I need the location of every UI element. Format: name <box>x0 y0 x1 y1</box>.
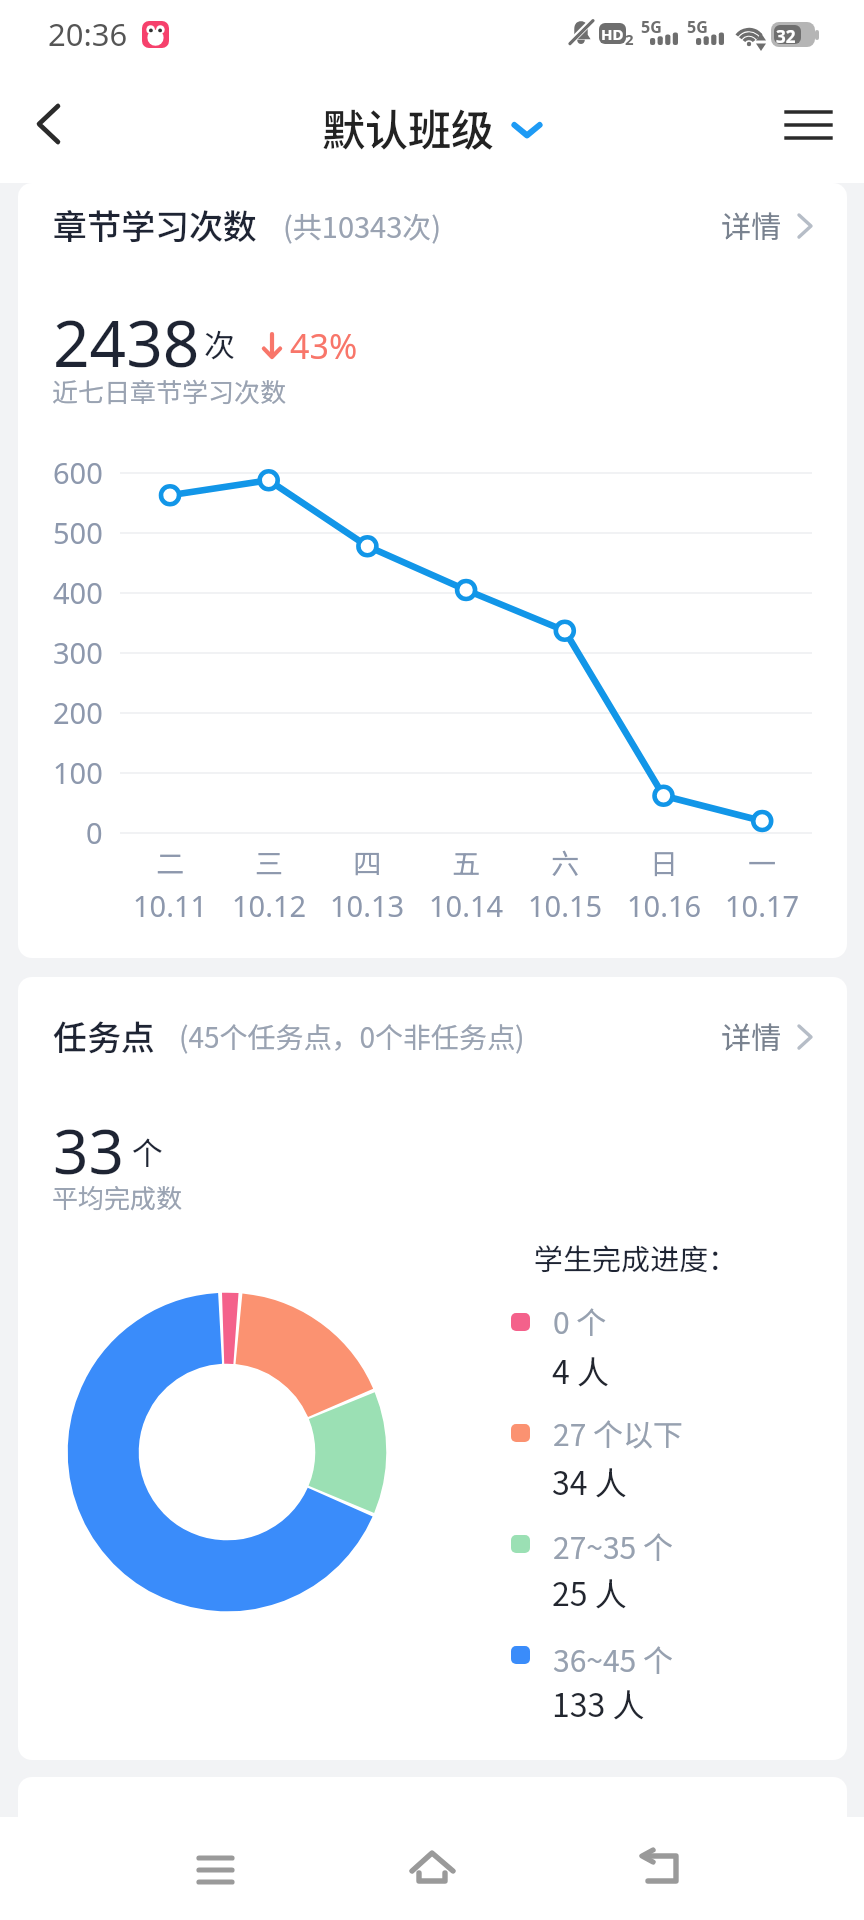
staticText: 日 <box>650 842 679 878</box>
staticText: 任务点 <box>53 1011 155 1060</box>
staticText: 10.13 <box>330 886 405 918</box>
staticText: 27~35 个 <box>553 1524 673 1567</box>
staticText: 五 <box>452 842 481 878</box>
staticText: 33 <box>53 1108 124 1192</box>
staticText: 详情 <box>721 203 781 246</box>
button[interactable]: 详情 <box>700 192 834 260</box>
button[interactable]: Home <box>391 1832 471 1904</box>
staticText: 章节学习次数 <box>53 200 257 249</box>
staticText: 600 <box>53 453 103 492</box>
staticText: 平均完成数 <box>52 1178 183 1216</box>
staticText: 个 <box>132 1129 163 1174</box>
staticText: 20:36 <box>48 13 128 55</box>
staticText: 2 <box>625 29 634 49</box>
staticText: (45个任务点，0个非任务点) <box>179 1016 525 1057</box>
staticText: 一 <box>748 842 777 878</box>
staticText: 400 <box>53 573 103 612</box>
staticText: 二 <box>156 842 185 878</box>
staticText: 10.11 <box>133 886 208 918</box>
staticText: 2438 <box>53 299 200 386</box>
staticText: HD <box>601 24 624 44</box>
staticText: 10.16 <box>627 886 702 918</box>
staticText: 次 <box>204 321 235 366</box>
staticText: 0 <box>86 813 103 852</box>
staticText: 36~45 个 <box>553 1637 673 1680</box>
staticText: 4 人 <box>552 1347 609 1393</box>
staticText: 四 <box>353 842 382 878</box>
staticText: 500 <box>53 513 103 552</box>
staticText: 三 <box>255 842 284 878</box>
staticText: 六 <box>551 842 580 878</box>
button[interactable]: Recent apps <box>177 1832 257 1904</box>
staticText: 200 <box>53 693 103 732</box>
staticText: 学生完成进度： <box>534 1236 738 1278</box>
staticText: 32 <box>776 25 796 48</box>
staticText: 300 <box>53 633 103 672</box>
staticText: 10.14 <box>429 886 504 918</box>
staticText: 133 人 <box>552 1680 645 1726</box>
staticText: 43% <box>290 323 358 369</box>
button[interactable]: 默认班级 <box>322 96 542 158</box>
staticText: 34 人 <box>552 1458 627 1504</box>
button[interactable]: 详情 <box>700 1003 834 1071</box>
staticText: 10.12 <box>232 886 307 918</box>
staticText: 10.15 <box>528 886 603 918</box>
button[interactable]: Menu <box>770 92 848 158</box>
button[interactable]: Back <box>12 90 84 158</box>
staticText: 5G <box>641 16 662 38</box>
staticText: 25 人 <box>552 1569 627 1615</box>
staticText: 27 个以下 <box>553 1411 684 1454</box>
button[interactable]: Back <box>620 1832 700 1904</box>
staticText: 详情 <box>721 1014 781 1057</box>
staticText: 100 <box>53 753 103 792</box>
staticText: 0 个 <box>553 1299 607 1342</box>
staticText: 近七日章节学习次数 <box>52 372 287 410</box>
staticText: 10.17 <box>725 886 800 918</box>
staticText: (共10343次) <box>283 204 442 246</box>
staticText: 默认班级 <box>322 96 494 158</box>
staticText: 5G <box>687 16 708 38</box>
